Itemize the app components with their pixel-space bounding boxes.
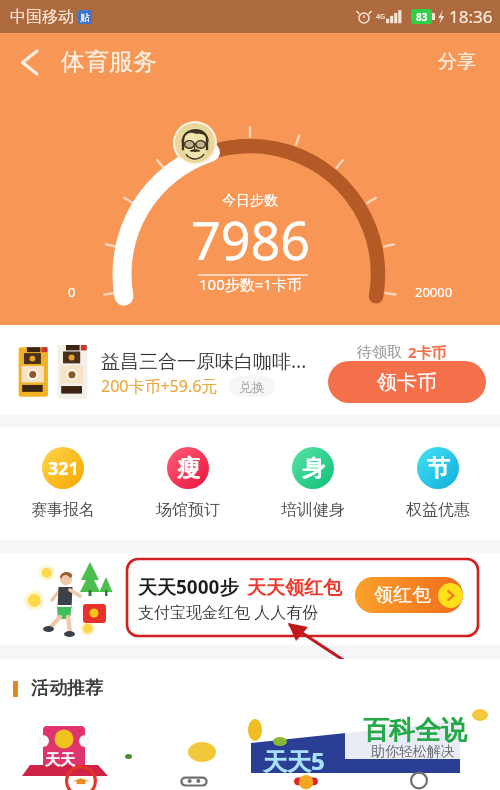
button[interactable]: Profile [388, 776, 450, 790]
staticText: 助你轻松解决 [371, 743, 455, 761]
staticText: 2卡币 [408, 342, 447, 362]
staticText: 今日步数 [222, 192, 278, 210]
staticText: 20000 [415, 283, 453, 301]
staticText: 活动推荐 [31, 677, 103, 700]
button[interactable]: Home [50, 776, 112, 790]
button[interactable]: 领红包 [355, 577, 463, 613]
staticText: 场馆预订 [156, 500, 220, 520]
button[interactable]: 节 [375, 427, 500, 540]
button[interactable]: User avatar [175, 123, 215, 163]
staticText: 200卡币+59.6元 [101, 375, 218, 397]
staticText: 益昌三合一原味白咖啡... [101, 348, 307, 374]
button[interactable]: Back [0, 33, 58, 91]
staticText: 领卡币 [377, 370, 437, 395]
staticText: 体育服务 [61, 47, 157, 77]
button[interactable]: 分享 [414, 38, 500, 86]
staticText: 4G [376, 12, 386, 22]
staticText: 权益优惠 [406, 500, 470, 520]
staticText: 节 [427, 454, 450, 483]
staticText: 贴 [80, 11, 90, 24]
staticText: 领红包 [374, 583, 431, 607]
staticText: 身 [302, 454, 325, 483]
button[interactable]: 领卡币 [328, 361, 486, 403]
staticText: 83 [416, 10, 428, 24]
button[interactable]: Wallet [275, 776, 337, 790]
button[interactable]: 瘦 [125, 427, 250, 540]
staticText: 支付宝现金红包 人人有份 [138, 601, 319, 623]
button[interactable]: 益昌三合一原味白咖啡... [0, 325, 500, 415]
staticText: 分享 [438, 50, 476, 74]
staticText: 赛事报名 [31, 500, 95, 520]
staticText: 百科全说 [363, 714, 467, 747]
staticText: 0 [68, 283, 76, 301]
staticText: 18:36 [449, 5, 493, 28]
staticText: 兑换 [239, 379, 265, 395]
staticText: 天天5 [263, 744, 325, 777]
button[interactable]: 兑换 [229, 376, 275, 397]
staticText: 瘦 [177, 454, 200, 483]
button[interactable]: 天天5000步 [127, 559, 478, 636]
staticText: 100步数=1卡币 [199, 274, 302, 294]
staticText: 待领取 [357, 343, 402, 362]
staticText: 天天领红包 [247, 576, 342, 600]
button[interactable]: Discover [163, 776, 225, 790]
button[interactable]: 321 [0, 427, 125, 540]
staticText: 7986 [191, 204, 310, 275]
button[interactable]: 活动推荐 [13, 677, 103, 700]
button[interactable]: 身 [250, 427, 375, 540]
staticText: 中国移动 [10, 7, 74, 27]
staticText: 天天5000步 [138, 574, 239, 600]
staticText: 天天 [45, 751, 75, 770]
staticText: 321 [48, 456, 79, 481]
staticText: 培训健身 [281, 500, 345, 520]
